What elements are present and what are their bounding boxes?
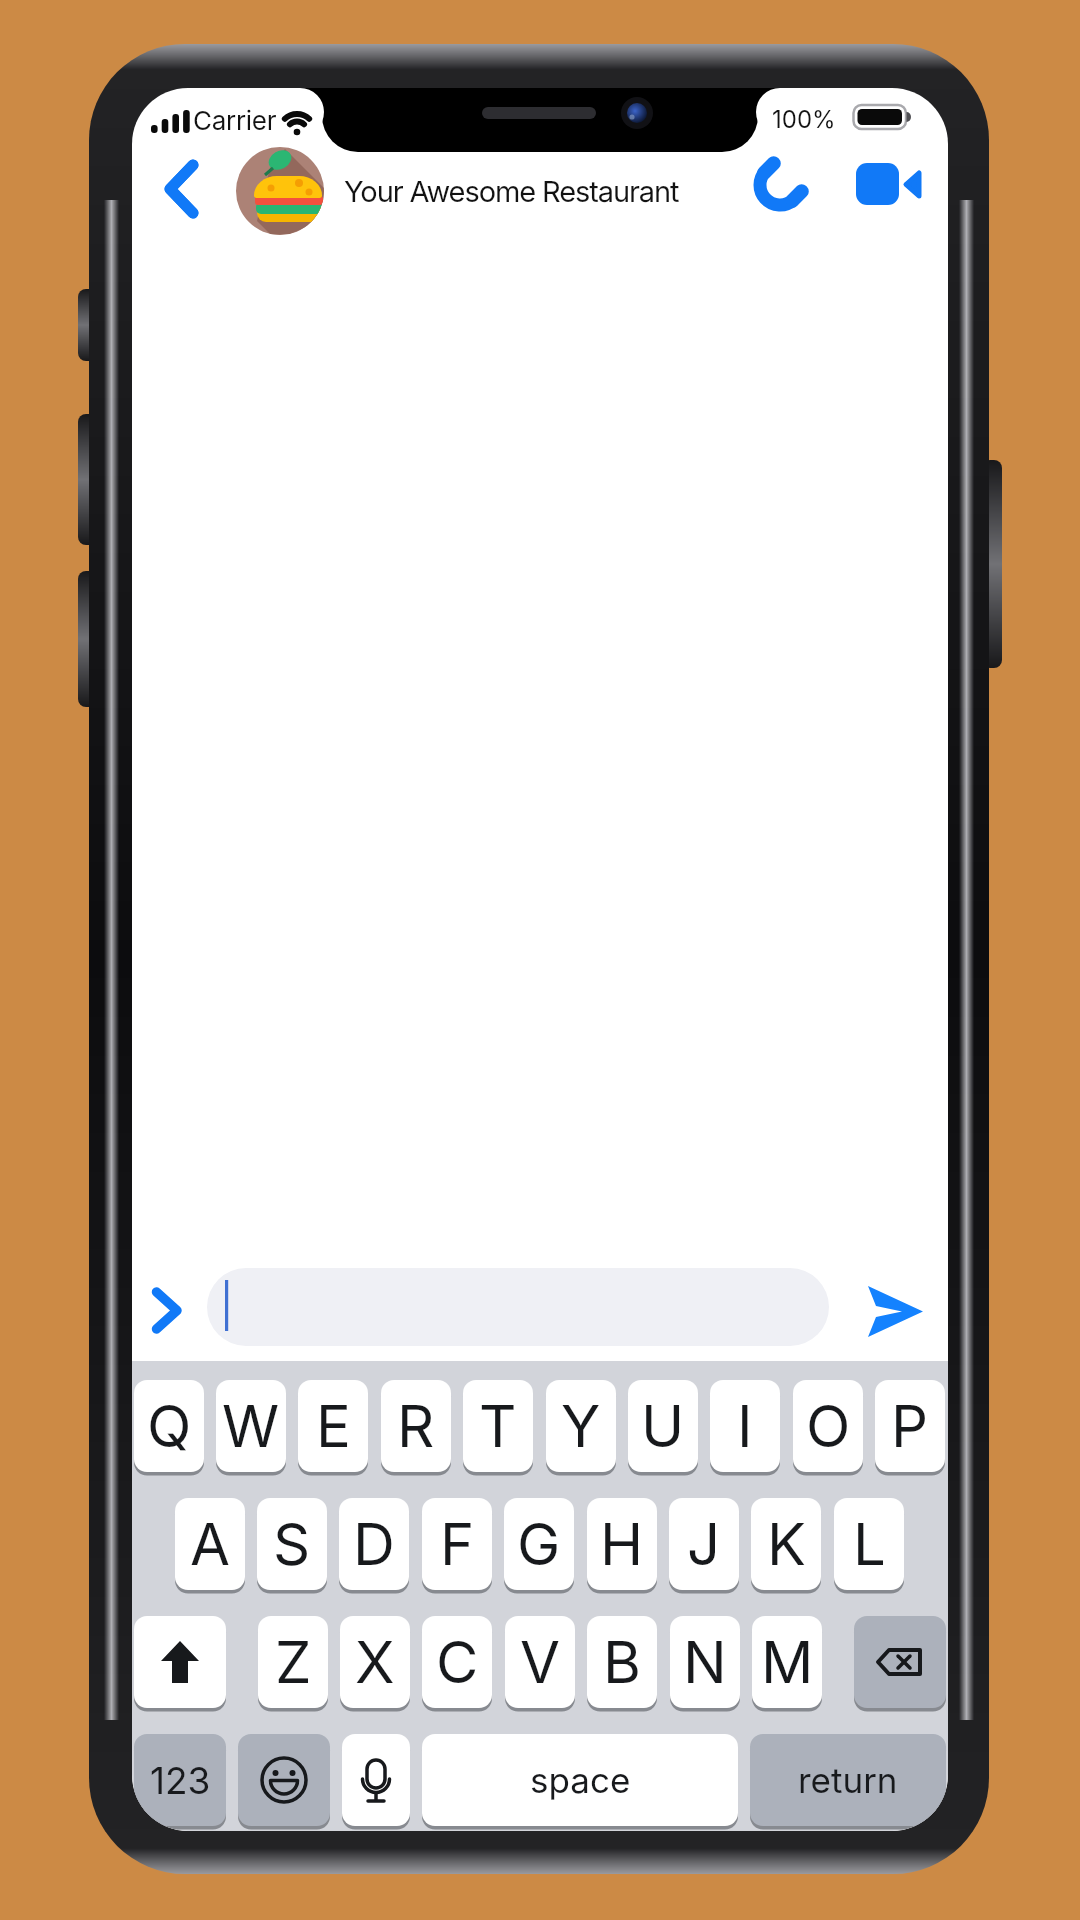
staticText: 100%: [772, 105, 836, 134]
staticText: E: [316, 1391, 351, 1461]
staticText: C: [436, 1627, 479, 1697]
button[interactable]: K: [751, 1498, 821, 1590]
staticText: O: [806, 1391, 851, 1461]
staticText: X: [355, 1627, 395, 1697]
button[interactable]: X: [340, 1616, 410, 1708]
button[interactable]: Q: [134, 1380, 204, 1472]
button[interactable]: J: [669, 1498, 739, 1590]
button[interactable]: N: [670, 1616, 740, 1708]
staticText: W: [222, 1391, 280, 1461]
staticText: return: [798, 1759, 898, 1801]
button[interactable]: [142, 1280, 197, 1342]
button[interactable]: L: [834, 1498, 904, 1590]
button[interactable]: [857, 1274, 937, 1350]
button[interactable]: R: [381, 1380, 451, 1472]
staticText: L: [853, 1509, 886, 1579]
staticText: 123: [150, 1758, 211, 1803]
staticText: Your Awesome Restaurant: [344, 174, 679, 209]
button[interactable]: [150, 150, 220, 230]
button[interactable]: [207, 1268, 829, 1346]
button[interactable]: P: [875, 1380, 945, 1472]
staticText: Y: [561, 1391, 601, 1461]
staticText: Q: [147, 1391, 192, 1461]
staticText: G: [517, 1509, 561, 1579]
button[interactable]: 123: [134, 1734, 226, 1826]
button[interactable]: M: [752, 1616, 822, 1708]
button[interactable]: [236, 147, 324, 235]
staticText: H: [600, 1509, 644, 1579]
staticText: R: [397, 1391, 435, 1461]
staticText: U: [641, 1391, 685, 1461]
staticText: Z: [275, 1627, 312, 1697]
button[interactable]: B: [587, 1616, 657, 1708]
button[interactable]: E: [298, 1380, 368, 1472]
button[interactable]: Y: [546, 1380, 616, 1472]
button[interactable]: F: [422, 1498, 492, 1590]
staticText: D: [353, 1509, 395, 1579]
button[interactable]: C: [422, 1616, 492, 1708]
staticText: J: [687, 1509, 721, 1579]
button[interactable]: space: [422, 1734, 738, 1826]
button[interactable]: [238, 1734, 330, 1826]
button[interactable]: [854, 1616, 946, 1708]
staticText: V: [520, 1627, 561, 1697]
button[interactable]: W: [216, 1380, 286, 1472]
button[interactable]: A: [175, 1498, 245, 1590]
button[interactable]: Z: [258, 1616, 328, 1708]
staticText: M: [761, 1627, 814, 1697]
staticText: F: [440, 1509, 475, 1579]
button[interactable]: V: [505, 1616, 575, 1708]
staticText: Carrier: [193, 105, 277, 136]
staticText: I: [737, 1391, 753, 1461]
button[interactable]: T: [463, 1380, 533, 1472]
button[interactable]: return: [750, 1734, 946, 1826]
button[interactable]: S: [257, 1498, 327, 1590]
staticText: T: [479, 1391, 517, 1461]
staticText: space: [530, 1759, 631, 1801]
staticText: B: [603, 1627, 641, 1697]
button[interactable]: G: [504, 1498, 574, 1590]
staticText: S: [273, 1509, 311, 1579]
button[interactable]: [134, 1616, 226, 1708]
button[interactable]: [342, 1734, 410, 1826]
button[interactable]: O: [793, 1380, 863, 1472]
staticText: K: [767, 1509, 806, 1579]
button[interactable]: U: [628, 1380, 698, 1472]
button[interactable]: [847, 153, 932, 217]
button[interactable]: [737, 144, 821, 224]
button[interactable]: I: [710, 1380, 780, 1472]
staticText: N: [683, 1627, 727, 1697]
staticText: P: [891, 1391, 929, 1461]
button[interactable]: D: [339, 1498, 409, 1590]
staticText: A: [190, 1509, 231, 1579]
button[interactable]: H: [587, 1498, 657, 1590]
